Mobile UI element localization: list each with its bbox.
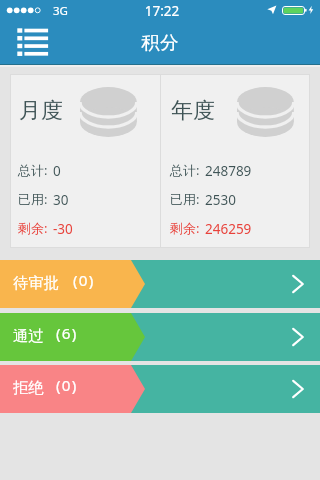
staticText: 总计: xyxy=(170,161,200,179)
staticText: 30 xyxy=(53,191,69,209)
staticText: 通过 xyxy=(13,326,44,345)
staticText: 已用: xyxy=(18,190,48,208)
button[interactable]: Menu xyxy=(10,24,50,58)
staticText: 剩余: xyxy=(18,219,48,237)
staticText: 拒绝 xyxy=(13,378,44,397)
staticText: 17:22 xyxy=(2,2,320,20)
staticText: 总计: xyxy=(18,161,48,179)
staticText: 246259 xyxy=(205,220,252,238)
staticText: 年度 xyxy=(171,97,215,125)
staticText: 积分 xyxy=(0,31,320,54)
staticText: (6) xyxy=(56,323,78,344)
staticText: 248789 xyxy=(205,162,252,180)
staticText: (0) xyxy=(56,375,78,396)
button[interactable]: 待审批 xyxy=(0,260,320,308)
staticText: 月度 xyxy=(19,97,63,125)
button[interactable]: 拒绝 xyxy=(0,365,320,413)
button[interactable]: 通过 xyxy=(0,313,320,361)
staticText: (0) xyxy=(73,270,95,291)
staticText: 0 xyxy=(53,162,61,180)
staticText: 已用: xyxy=(170,190,200,208)
staticText: 剩余: xyxy=(170,219,200,237)
staticText: 3G xyxy=(53,3,68,19)
staticText: -30 xyxy=(53,220,73,238)
staticText: 待审批 xyxy=(13,273,59,292)
staticText: 2530 xyxy=(205,191,236,209)
